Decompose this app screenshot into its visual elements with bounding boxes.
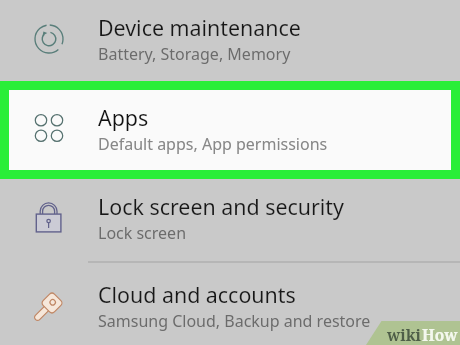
staticText: Default apps, App permissions xyxy=(98,133,328,155)
other: Device maintenance xyxy=(25,15,73,63)
staticText: Lock screen and security xyxy=(98,192,344,221)
button[interactable]: Apps xyxy=(0,81,460,179)
staticText: Battery, Storage, Memory xyxy=(98,43,291,65)
button[interactable]: Device maintenance xyxy=(0,0,460,89)
other: Apps xyxy=(25,104,73,152)
staticText: Lock screen xyxy=(98,222,187,244)
staticText: wiki xyxy=(387,324,422,345)
staticText: How xyxy=(422,324,458,345)
staticText: Device maintenance xyxy=(98,13,301,42)
other: Cloud and accounts xyxy=(25,279,73,327)
staticText: Apps xyxy=(98,103,149,132)
button[interactable]: Lock screen and security xyxy=(0,179,460,268)
button[interactable]: Cloud and accounts xyxy=(0,267,460,345)
staticText: Samsung Cloud, Backup and restore xyxy=(98,310,371,332)
staticText: Cloud and accounts xyxy=(98,280,296,309)
other: Lock screen and security xyxy=(25,199,73,247)
